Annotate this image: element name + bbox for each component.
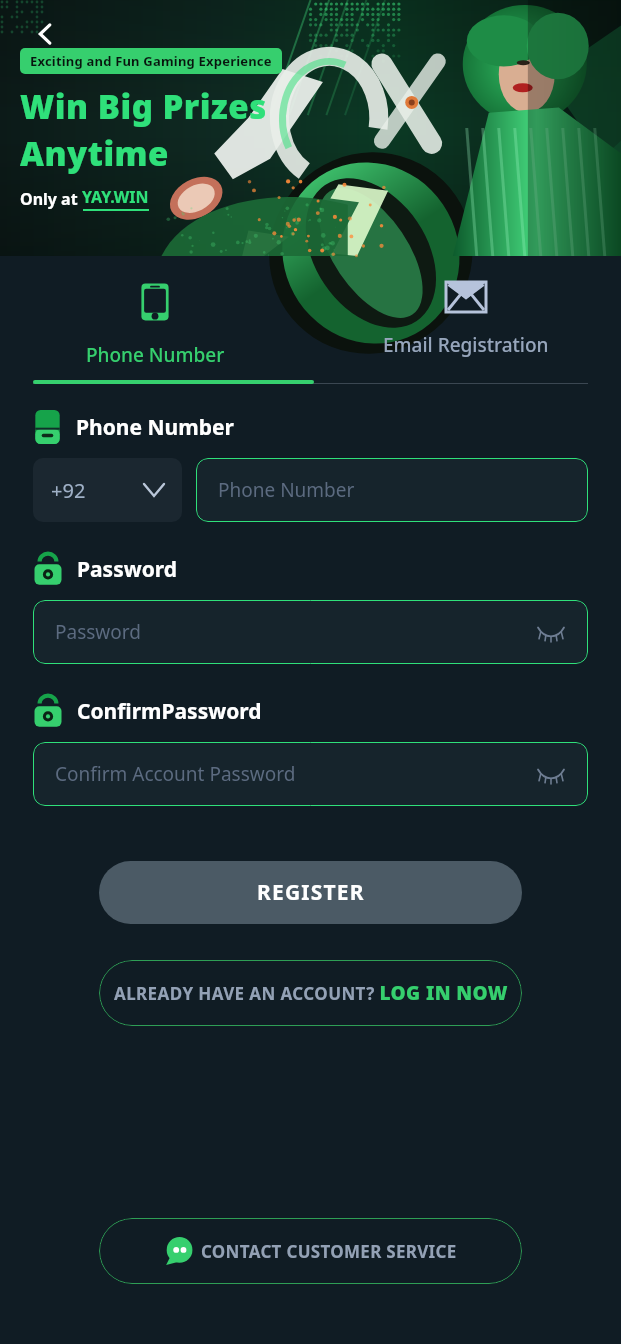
staticText: Phone Number	[218, 477, 566, 503]
staticText: Phone Number	[76, 413, 234, 442]
button[interactable]: Show password	[536, 617, 566, 647]
staticText: Password	[55, 619, 536, 645]
staticText: Anytime	[20, 131, 169, 176]
button[interactable]: Back	[26, 14, 66, 54]
staticText: +92	[51, 477, 86, 504]
staticText: ALREADY HAVE AN ACCOUNT? LOG IN NOW	[114, 980, 508, 1006]
staticText: Phone Number	[86, 342, 225, 368]
button[interactable]: CONTACT CUSTOMER SERVICE	[99, 1218, 522, 1284]
staticText: Exciting and Fun Gaming Experience	[30, 52, 272, 70]
staticText: REGISTER	[257, 878, 365, 907]
staticText: CONTACT CUSTOMER SERVICE	[201, 1240, 457, 1263]
button[interactable]: REGISTER	[99, 861, 522, 924]
staticText: Password	[77, 555, 178, 584]
button[interactable]: Confirm Account Password	[33, 742, 588, 806]
staticText: Only at	[20, 188, 82, 210]
staticText: Email Registration	[383, 332, 549, 358]
staticText: Confirm Account Password	[55, 761, 536, 787]
button[interactable]: Password	[33, 600, 588, 664]
staticText: YAY.WIN	[82, 186, 149, 208]
staticText: Win Big Prizes	[20, 84, 267, 129]
staticText: ConfirmPassword	[77, 697, 262, 726]
button[interactable]: +92	[33, 458, 182, 522]
button[interactable]: Email Registration	[310, 264, 621, 358]
button[interactable]: Show password	[536, 759, 566, 789]
button[interactable]: Phone Number	[0, 264, 310, 368]
button[interactable]: ALREADY HAVE AN ACCOUNT? LOG IN NOW	[99, 960, 522, 1026]
button[interactable]: Phone Number	[196, 458, 588, 522]
